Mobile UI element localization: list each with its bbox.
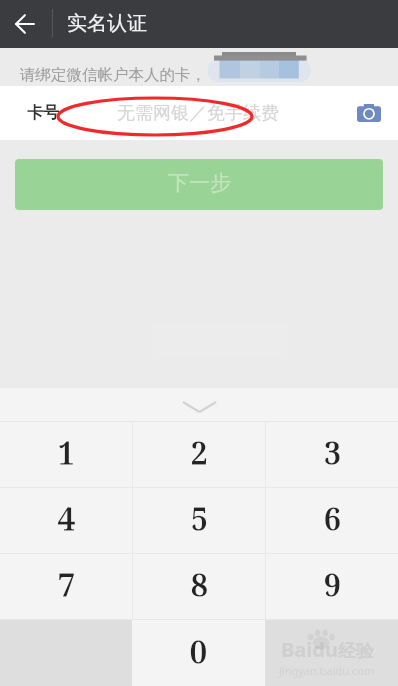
staticText: 1 (58, 432, 75, 473)
staticText: 7 (58, 564, 75, 605)
staticText: jingyan.baidu.com (279, 663, 375, 678)
staticText: 5 (191, 498, 208, 539)
staticText: 4 (58, 498, 75, 539)
staticText: 8 (191, 564, 208, 605)
button[interactable]: 6 (266, 488, 398, 553)
staticText: 请绑定微信帐户本人的卡， (20, 65, 206, 85)
staticText: 6 (324, 498, 341, 539)
button[interactable]: 5 (133, 488, 265, 553)
button[interactable]: 2 (133, 422, 265, 487)
staticText: 经验 (338, 640, 374, 663)
staticText: 下一步 (168, 170, 231, 196)
staticText: 实名认证 (67, 11, 147, 36)
button[interactable]: 8 (133, 554, 265, 619)
button[interactable]: Scan card with camera (352, 96, 386, 130)
button[interactable]: 0 (132, 620, 265, 686)
staticText: 无需网银／免手续费 (117, 102, 279, 125)
button[interactable]: 4 (0, 488, 132, 553)
staticText: 9 (324, 564, 341, 605)
button[interactable]: 9 (266, 554, 398, 619)
staticText: 3 (324, 432, 341, 473)
button[interactable]: Delete (265, 620, 398, 686)
staticText: 卡号 (27, 103, 59, 123)
button[interactable]: 7 (0, 554, 132, 619)
button[interactable]: 下一步 (15, 159, 383, 210)
staticText: 0 (190, 631, 207, 672)
staticText: 2 (191, 432, 208, 473)
button[interactable]: 3 (266, 422, 398, 487)
button[interactable]: 1 (0, 422, 132, 487)
staticText: Baidu (281, 636, 338, 663)
button[interactable]: Back (0, 0, 48, 48)
